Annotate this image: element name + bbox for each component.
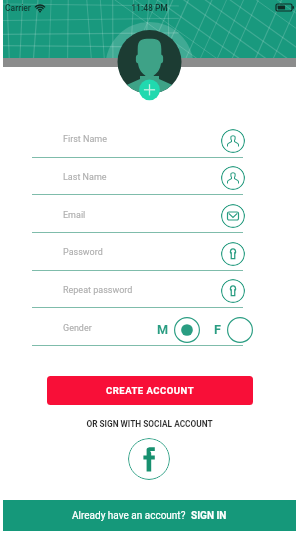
staticText: Repeat password <box>63 285 133 296</box>
staticText: Already have an account? <box>72 510 191 522</box>
staticText: First Name <box>63 134 108 145</box>
button[interactable]: CREATE ACCOUNT <box>47 376 253 405</box>
staticText: CREATE ACCOUNT <box>106 385 195 396</box>
button[interactable]: M <box>157 316 200 343</box>
staticText: M <box>157 322 169 337</box>
staticText: SIGN IN <box>191 510 227 522</box>
button[interactable]: F <box>214 316 253 343</box>
staticText: OR SIGN WITH SOCIAL ACCOUNT <box>3 419 296 429</box>
button[interactable]: First Name <box>221 129 245 153</box>
button[interactable]: Email <box>221 204 245 228</box>
staticText: Carrier <box>5 3 31 13</box>
button[interactable]: Repeat password <box>221 279 245 303</box>
staticText: Email <box>63 210 86 221</box>
staticText: Last Name <box>63 172 107 183</box>
staticText: Gender <box>63 323 92 334</box>
button[interactable]: Sign in with Facebook <box>128 438 170 480</box>
button[interactable]: Password <box>221 242 245 266</box>
button[interactable]: Last Name <box>221 166 245 190</box>
staticText: Password <box>63 247 103 258</box>
staticText: F <box>214 322 221 337</box>
button[interactable]: Already have an account? <box>3 500 296 531</box>
staticText: 11:48 PM <box>3 3 296 13</box>
